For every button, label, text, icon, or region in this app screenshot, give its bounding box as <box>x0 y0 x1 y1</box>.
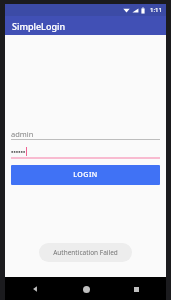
staticText: admin <box>11 129 34 139</box>
staticText: LOGIN <box>73 170 98 180</box>
staticText: Authentication Failed <box>53 248 118 257</box>
staticText: 1:11 <box>150 6 162 14</box>
button[interactable]: admin <box>11 128 160 140</box>
button[interactable]: LOGIN <box>11 165 160 185</box>
button[interactable]: Recent apps <box>128 281 144 297</box>
button[interactable] <box>11 146 160 159</box>
staticText: SimpleLogin <box>12 20 66 32</box>
button[interactable]: Home <box>78 281 94 297</box>
button[interactable]: Back <box>27 281 43 297</box>
